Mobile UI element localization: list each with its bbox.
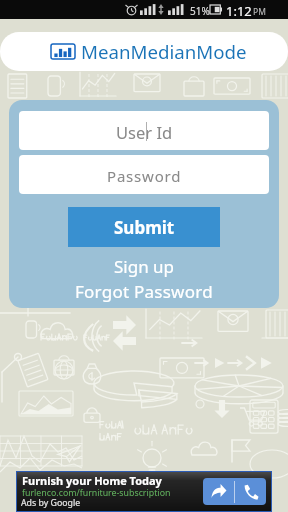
staticText: User Id: [116, 121, 173, 143]
staticText: Submit: [114, 216, 175, 239]
staticText: Ads by Google: [21, 497, 81, 509]
button[interactable]: MeanMedianMode: [0, 32, 288, 71]
button[interactable]: Sign up: [104, 255, 185, 278]
button[interactable]: Forgot Password: [65, 280, 223, 303]
button[interactable]: Password: [19, 155, 269, 194]
staticText: 51%: [190, 4, 210, 18]
staticText: Password: [107, 166, 182, 186]
staticText: furlenco.com/furniture-subscription: [22, 487, 171, 499]
button[interactable]: User Id: [19, 111, 269, 150]
button[interactable]: Submit: [68, 207, 220, 247]
button[interactable]: Furnish your Home Today: [17, 472, 271, 511]
staticText: 1:12: [226, 2, 252, 20]
staticText: MeanMedianMode: [81, 39, 247, 64]
staticText: Furnish your Home Today: [22, 473, 162, 488]
button[interactable]: Open ad and call: [203, 478, 266, 505]
staticText: PM: [253, 6, 266, 18]
staticText: Forgot Password: [75, 280, 213, 303]
staticText: Sign up: [114, 255, 175, 278]
